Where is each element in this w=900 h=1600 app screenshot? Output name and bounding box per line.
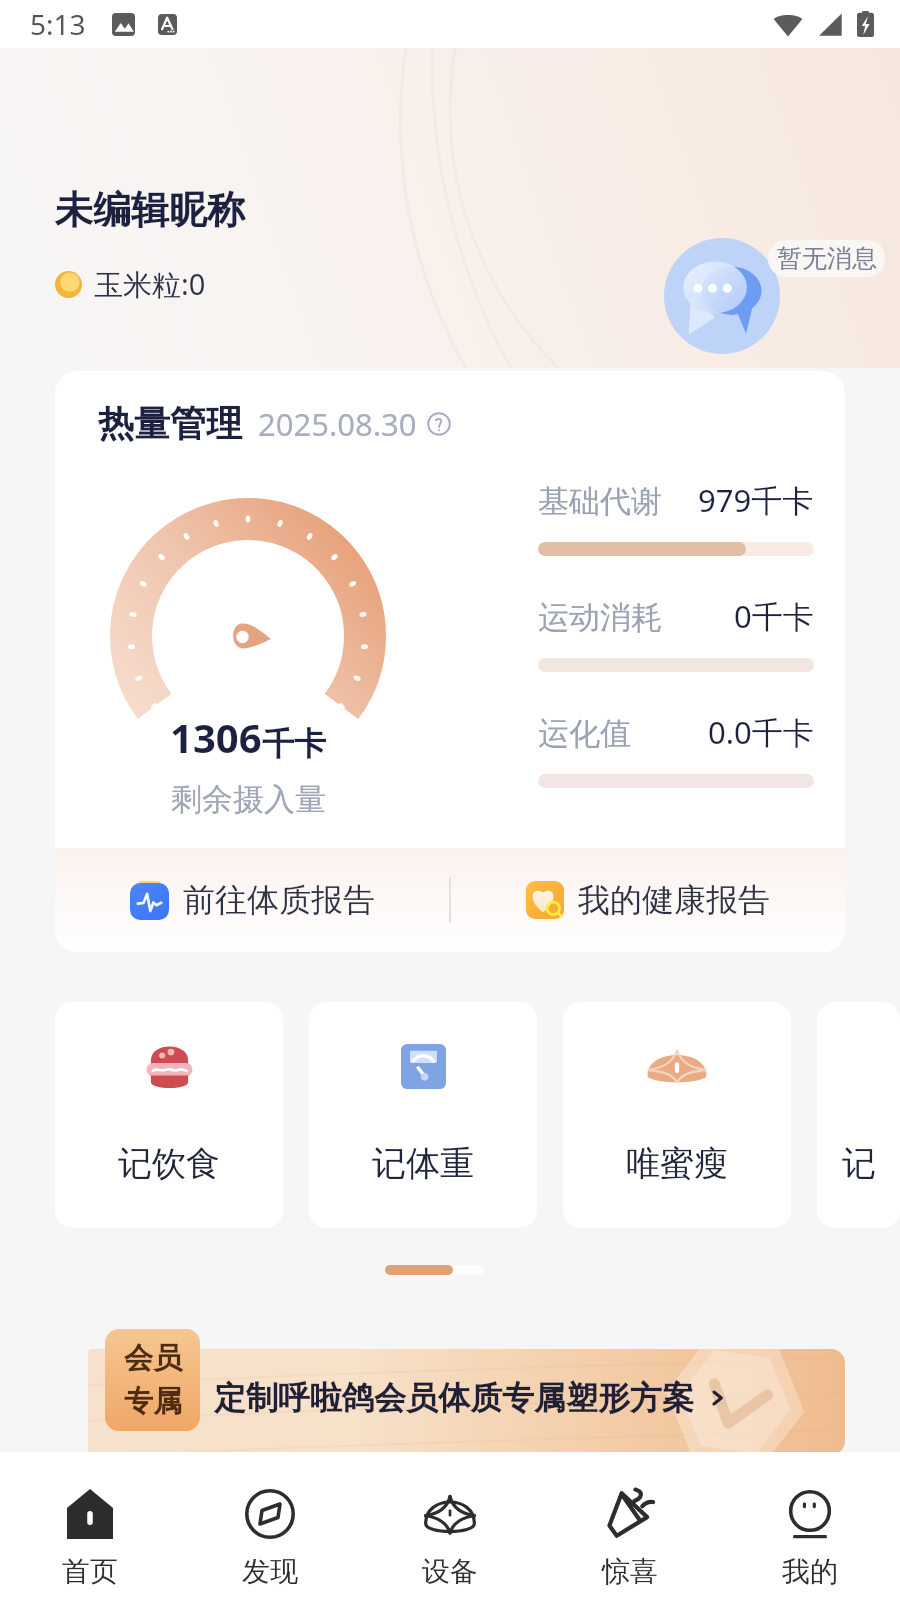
staticText: 剩余摄入量 — [171, 780, 326, 819]
button[interactable]: 惊喜 — [540, 1488, 720, 1600]
staticText: 首页 — [62, 1554, 118, 1589]
staticText: 1306 — [170, 710, 262, 764]
staticText: 惊喜 — [602, 1554, 658, 1589]
button[interactable]: 设备 — [360, 1488, 540, 1600]
staticText: 前往体质报告 — [183, 880, 375, 920]
button[interactable]: 记饮食 — [55, 1002, 283, 1228]
staticText: 运化值 — [538, 714, 631, 753]
button[interactable]: 我的 — [720, 1488, 900, 1600]
staticText: 设备 — [422, 1554, 478, 1589]
staticText: 0千卡 — [734, 595, 814, 637]
button[interactable]: 发现 — [180, 1488, 360, 1600]
staticText: 基础代谢 — [538, 482, 662, 521]
button[interactable]: 记 — [817, 1002, 900, 1228]
staticText: 979千卡 — [698, 479, 814, 521]
staticText: 玉米粒:0 — [94, 264, 206, 304]
button[interactable]: 唯蜜瘦 — [563, 1002, 791, 1228]
staticText: 发现 — [242, 1554, 298, 1589]
staticText: 专属 — [124, 1383, 182, 1420]
staticText: 记体重 — [372, 1142, 474, 1185]
staticText: 我的健康报告 — [578, 880, 770, 920]
staticText: 暂无消息 — [777, 243, 877, 274]
staticText: 热量管理 — [98, 401, 242, 446]
staticText: 唯蜜瘦 — [626, 1142, 728, 1185]
button[interactable]: Messages — [664, 238, 780, 354]
staticText: 记饮食 — [118, 1142, 220, 1185]
staticText: 我的 — [782, 1554, 838, 1589]
staticText: 运动消耗 — [538, 598, 662, 637]
staticText: 千卡 — [262, 724, 326, 764]
staticText: 会员 — [124, 1340, 182, 1377]
button[interactable]: 前往体质报告 — [55, 848, 449, 952]
button[interactable]: 我的健康报告 — [451, 848, 845, 952]
staticText: 0.0千卡 — [708, 711, 814, 753]
staticText: 5:13 — [30, 5, 86, 43]
button[interactable]: 定制呼啦鸽会员体质专属塑形方案 — [88, 1349, 845, 1455]
staticText: 记 — [842, 1142, 876, 1185]
staticText: 定制呼啦鸽会员体质专属塑形方案 — [214, 1378, 694, 1418]
button[interactable]: 首页 — [0, 1488, 180, 1600]
button[interactable]: 记体重 — [309, 1002, 537, 1228]
staticText: 未编辑昵称 — [55, 186, 245, 234]
staticText: 2025.08.30 — [258, 403, 417, 445]
